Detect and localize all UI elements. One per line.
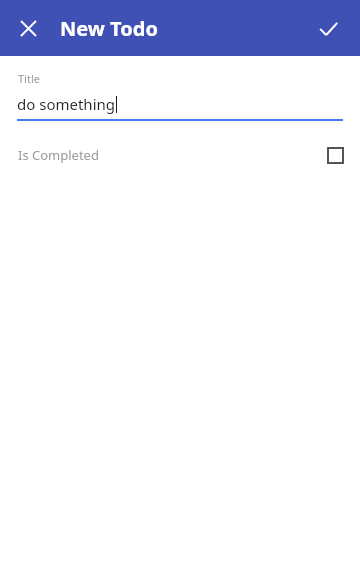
button[interactable]: Is Completed xyxy=(0,141,360,169)
staticText: Title xyxy=(18,71,40,86)
other: Is Completed checkbox xyxy=(326,146,344,164)
button[interactable]: Close xyxy=(12,12,44,44)
staticText: do something xyxy=(17,94,115,114)
button[interactable]: do something xyxy=(17,94,343,114)
staticText: New Todo xyxy=(60,15,158,42)
staticText: Is Completed xyxy=(18,146,99,164)
button[interactable]: Save xyxy=(312,12,344,44)
